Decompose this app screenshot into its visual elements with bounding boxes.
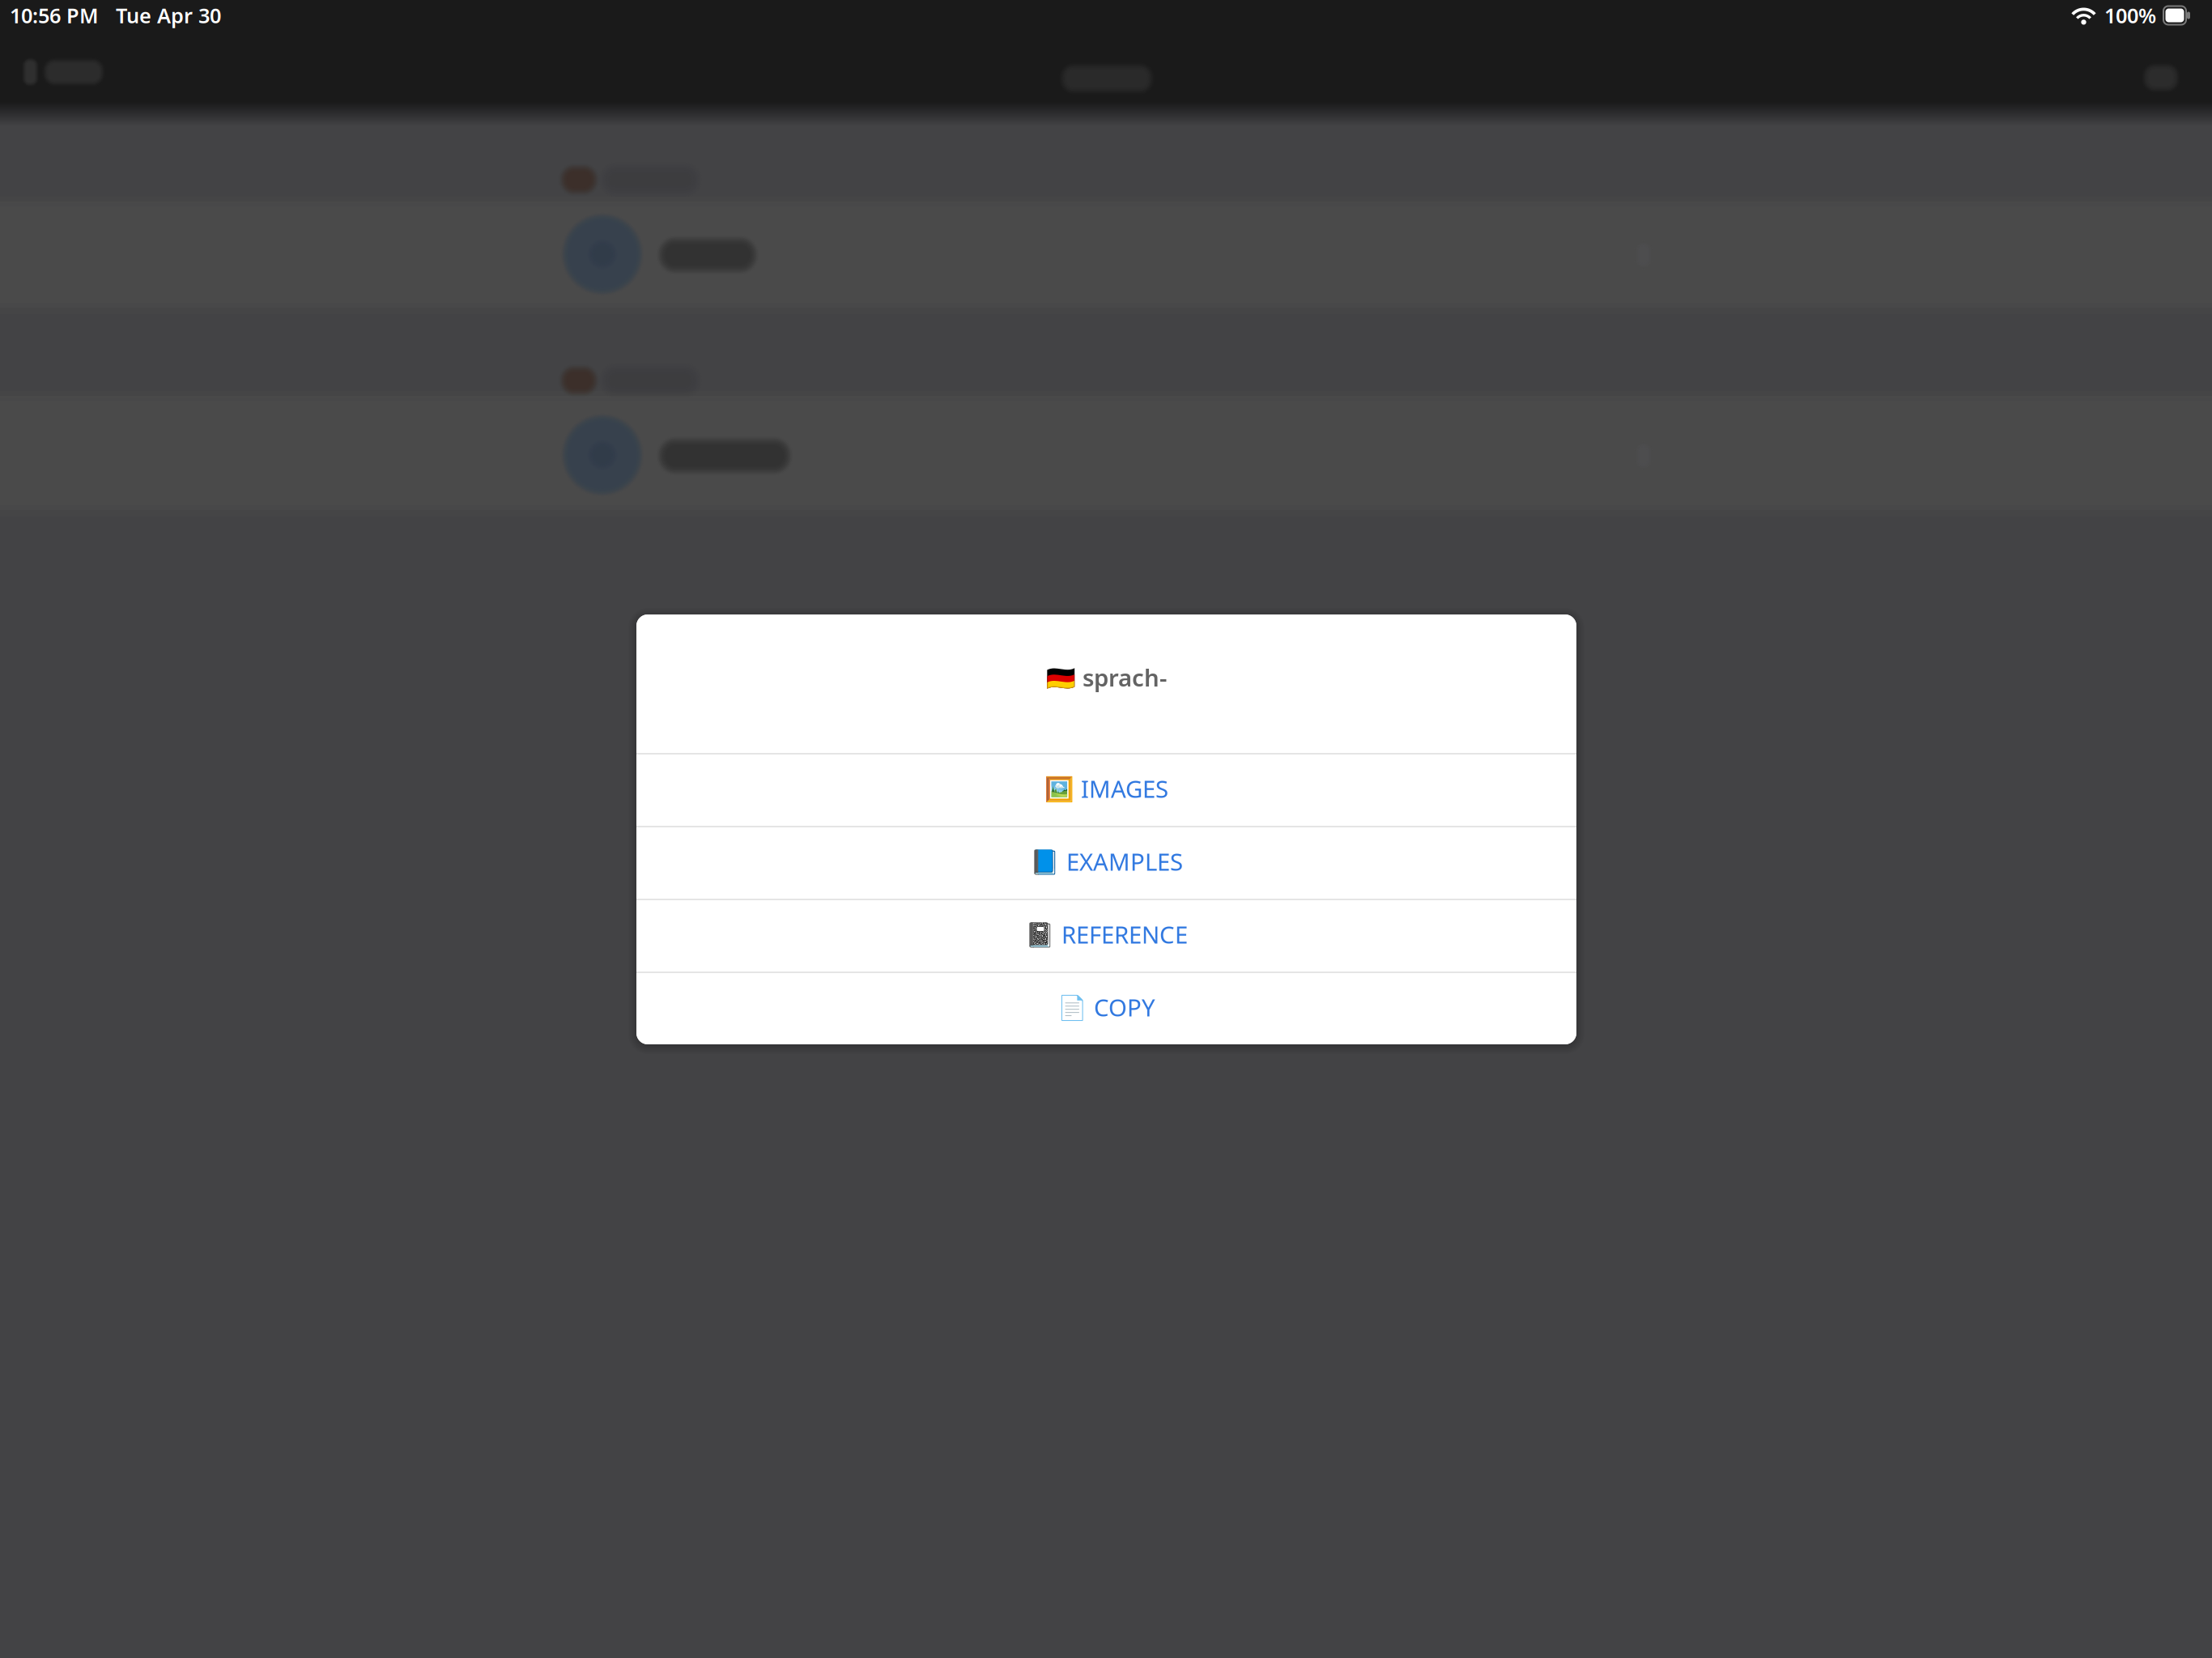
button[interactable]: 📄 COPY [636,973,1576,1044]
button[interactable]: Back [21,57,104,87]
button[interactable]: 📘 EXAMPLES [636,827,1576,899]
button[interactable]: 📓 REFERENCE [636,900,1576,971]
staticText: 📓 REFERENCE [1025,918,1188,950]
staticText: 📘 EXAMPLES [1030,846,1183,877]
staticText: 🖼️ IMAGES [1044,773,1168,804]
button[interactable]: Edit [2141,62,2181,94]
staticText: 🇩🇪 sprach- [1046,661,1167,693]
button[interactable]: speaking [557,415,1707,495]
button[interactable]: sprach- [557,215,1707,294]
staticText: 100% [2104,2,2156,29]
button[interactable]: 🖼️ IMAGES [636,755,1576,826]
staticText: 📄 COPY [1057,991,1155,1023]
staticText: Tue Apr 30 [116,2,221,29]
staticText: 10:56 PM [10,2,99,29]
